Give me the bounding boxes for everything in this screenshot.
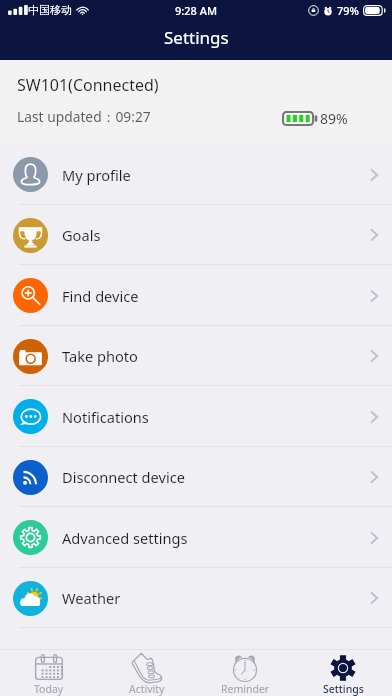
button[interactable]: Advanced settings xyxy=(0,507,392,568)
button[interactable]: My profile xyxy=(0,144,392,205)
staticText: Notifications xyxy=(62,407,149,427)
staticText: Find device xyxy=(62,286,139,306)
button[interactable]: Take photo xyxy=(0,326,392,386)
staticText: My profile xyxy=(62,165,131,185)
staticText: SW101(Connected) xyxy=(17,74,159,96)
staticText: 9:28 AM xyxy=(175,3,218,18)
button[interactable]: Notifications xyxy=(0,386,392,447)
staticText: Settings xyxy=(323,682,364,696)
button[interactable]: Reminder xyxy=(196,650,294,696)
staticText: Settings xyxy=(164,26,229,49)
button[interactable]: Settings xyxy=(294,650,392,696)
staticText: Today xyxy=(34,682,64,696)
staticText: Reminder xyxy=(221,682,270,696)
staticText: Last updated：09:27 xyxy=(17,107,151,126)
staticText: 中国移动 xyxy=(28,3,72,17)
button[interactable]: Goals xyxy=(0,205,392,265)
staticText: Activity xyxy=(129,682,165,696)
button[interactable]: Today xyxy=(0,650,98,696)
button[interactable]: Find device xyxy=(0,265,392,326)
button[interactable]: Disconnect device xyxy=(0,447,392,507)
staticText: 79% xyxy=(337,3,359,18)
button[interactable]: Weather xyxy=(0,568,392,628)
staticText: 89% xyxy=(320,109,348,128)
staticText: Goals xyxy=(62,225,101,245)
staticText: Take photo xyxy=(62,346,138,366)
staticText: Advanced settings xyxy=(62,528,188,548)
staticText: Disconnect device xyxy=(62,467,185,487)
staticText: Weather xyxy=(62,588,121,608)
button[interactable]: Activity xyxy=(98,650,196,696)
